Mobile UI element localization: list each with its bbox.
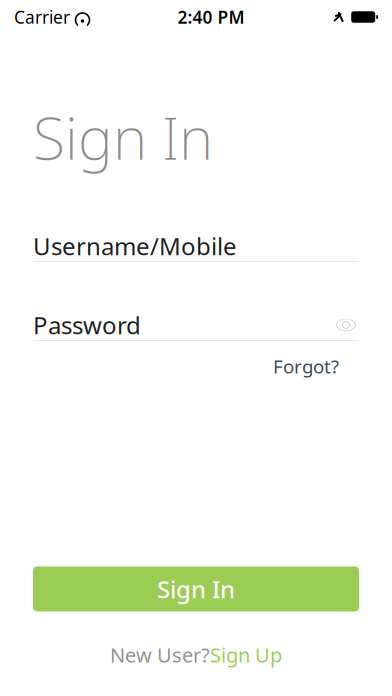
staticText: 2:40 PM <box>178 5 245 28</box>
staticText: Username/Mobile <box>33 230 237 262</box>
button[interactable]: Show password <box>333 312 359 338</box>
staticText: Sign Up <box>210 641 282 668</box>
staticText: Password <box>33 309 141 341</box>
staticText: Carrier <box>14 5 70 28</box>
staticText: Forgot? <box>273 354 339 379</box>
staticText: New User? <box>110 641 210 668</box>
staticText: Sign In <box>33 98 213 176</box>
button[interactable]: Forgot? <box>273 350 339 383</box>
button[interactable]: Sign In <box>33 566 359 611</box>
staticText: Sign In <box>157 573 235 605</box>
button[interactable]: New User? <box>110 635 282 674</box>
